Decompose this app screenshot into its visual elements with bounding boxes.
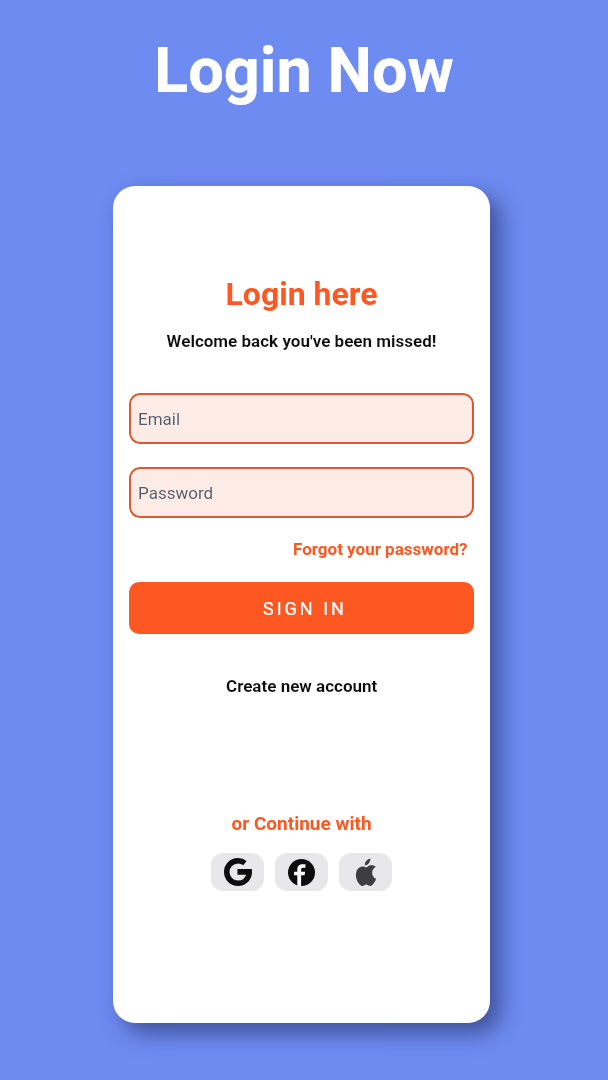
- staticText: Welcome back you've been missed!: [113, 331, 490, 351]
- button[interactable]: Sign in with Facebook: [275, 853, 328, 891]
- button[interactable]: Sign in with Apple: [339, 853, 392, 891]
- staticText: Password: [138, 483, 214, 503]
- button[interactable]: Password: [129, 467, 474, 518]
- staticText: SIGN IN: [263, 598, 347, 619]
- staticText: Email: [138, 409, 181, 429]
- button[interactable]: Sign in with Google: [211, 853, 264, 891]
- staticText: Login Now: [0, 34, 608, 108]
- staticText: Login here: [113, 275, 490, 313]
- staticText: or Continue with: [113, 812, 490, 834]
- button[interactable]: Create new account: [226, 676, 378, 696]
- button[interactable]: Email: [129, 393, 474, 444]
- button[interactable]: Forgot your password?: [293, 539, 468, 559]
- button[interactable]: SIGN IN: [129, 582, 474, 634]
